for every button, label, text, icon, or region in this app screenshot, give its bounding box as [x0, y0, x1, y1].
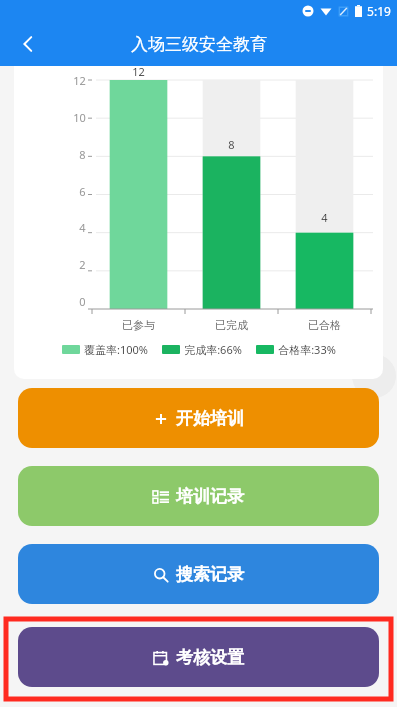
- staticText: 12: [132, 66, 145, 79]
- button[interactable]: Back: [8, 24, 48, 64]
- staticText: 已合格: [308, 318, 341, 332]
- staticText: 覆盖率:100%: [84, 342, 148, 357]
- staticText: 入场三级安全教育: [131, 34, 267, 55]
- staticText: 4: [79, 220, 86, 235]
- staticText: 2: [79, 257, 86, 272]
- staticText: 4: [321, 210, 328, 225]
- staticText: 6: [79, 184, 86, 199]
- staticText: 已参与: [122, 318, 155, 332]
- staticText: 考核设置: [176, 647, 244, 668]
- staticText: 5:19: [367, 3, 391, 19]
- button[interactable]: 开始培训: [18, 388, 379, 448]
- staticText: 开始培训: [176, 408, 244, 429]
- staticText: 培训记录: [176, 486, 244, 507]
- staticText: 8: [228, 137, 235, 152]
- button[interactable]: 搜索记录: [18, 544, 379, 604]
- staticText: 合格率:33%: [278, 342, 336, 357]
- staticText: 12: [73, 73, 86, 88]
- staticText: 搜索记录: [176, 564, 244, 585]
- staticText: 已完成: [215, 318, 248, 332]
- button[interactable]: 培训记录: [18, 466, 379, 526]
- staticText: 10: [73, 110, 86, 125]
- staticText: 8: [79, 147, 86, 162]
- button[interactable]: 考核设置: [18, 627, 379, 687]
- staticText: 完成率:66%: [184, 342, 242, 357]
- staticText: 0: [79, 294, 86, 309]
